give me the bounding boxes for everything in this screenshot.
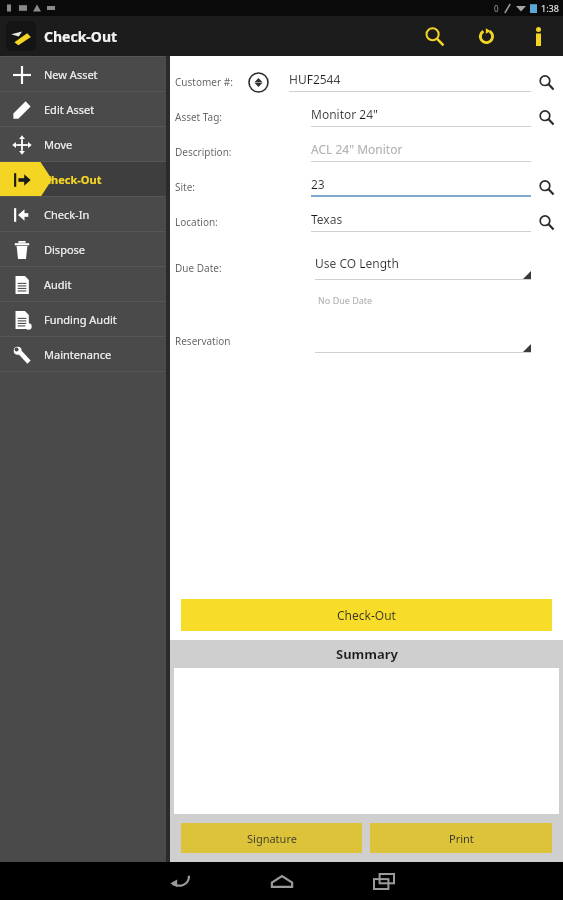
button[interactable]: Print — [370, 823, 552, 853]
button[interactable]: Due Date: — [170, 250, 563, 285]
button[interactable]: Audit — [0, 267, 166, 302]
button[interactable]: Search Asset Tag: — [531, 102, 561, 132]
staticText: 1:38 — [541, 2, 559, 14]
button[interactable]: Search Location: — [531, 207, 561, 237]
staticText: 0 — [494, 3, 499, 14]
button[interactable]: Move — [0, 127, 166, 162]
staticText: Check-Out — [44, 172, 102, 187]
staticText: Check-Out — [337, 607, 396, 623]
button[interactable]: New Asset — [0, 57, 166, 92]
button[interactable]: Refresh — [469, 19, 503, 53]
button[interactable]: Search Customer #: — [531, 67, 561, 97]
staticText: Customer #: — [175, 75, 233, 89]
button[interactable]: Signature — [181, 823, 362, 853]
button[interactable]: Check-Out — [0, 162, 166, 197]
staticText: Location: — [175, 215, 218, 229]
button[interactable]: Search Site: — [531, 172, 561, 202]
staticText: 23 — [311, 176, 325, 192]
button[interactable]: Check-Out — [181, 599, 552, 631]
button[interactable]: Dispose — [0, 232, 166, 267]
staticText: Asset Tag: — [175, 110, 223, 124]
staticText: Reservation — [175, 334, 231, 348]
button[interactable]: Recent apps — [356, 862, 412, 900]
staticText: Signature — [247, 831, 297, 846]
staticText: Dispose — [44, 242, 86, 257]
button[interactable]: Back — [152, 862, 208, 900]
staticText: ACL 24" Monitor — [311, 141, 403, 157]
staticText: Audit — [44, 277, 72, 292]
staticText: Maintenance — [44, 347, 112, 362]
staticText: Edit Asset — [44, 102, 95, 117]
button[interactable]: Maintenance — [0, 337, 166, 372]
staticText: Site: — [175, 180, 195, 194]
staticText: Summary — [336, 645, 398, 663]
button[interactable]: App logo — [6, 21, 36, 51]
button[interactable]: Check-In — [0, 197, 166, 232]
staticText: Print — [449, 831, 474, 846]
staticText: Move — [44, 137, 73, 152]
staticText: Texas — [311, 211, 343, 227]
button[interactable]: More options — [521, 19, 555, 53]
button[interactable]: Customer selector — [247, 71, 269, 93]
staticText: Due Date: — [175, 261, 222, 275]
staticText: Funding Audit — [44, 312, 117, 327]
staticText: No Due Date — [318, 294, 373, 306]
staticText: Use CO Length — [315, 255, 399, 271]
staticText: Check-Out — [44, 27, 118, 46]
button[interactable]: Funding Audit — [0, 302, 166, 337]
button[interactable]: Edit Asset — [0, 92, 166, 127]
staticText: Check-In — [44, 207, 90, 222]
staticText: Description: — [175, 145, 232, 159]
staticText: New Asset — [44, 67, 98, 82]
button[interactable]: Reservation — [170, 323, 563, 358]
button[interactable]: Home — [254, 862, 310, 900]
staticText: Monitor 24" — [311, 106, 378, 122]
button[interactable]: Search — [417, 19, 451, 53]
staticText: HUF2544 — [289, 71, 341, 87]
